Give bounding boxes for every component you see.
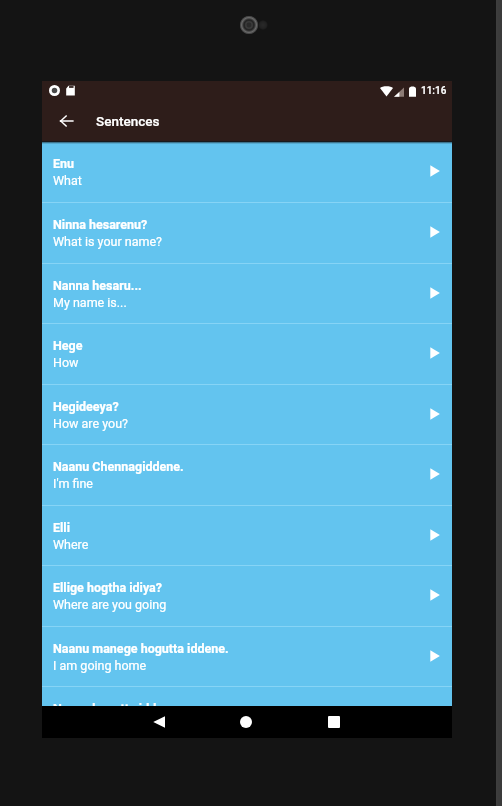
staticText: 11:16 (421, 85, 447, 97)
button[interactable]: Play (422, 461, 448, 487)
staticText: Enu (53, 156, 75, 171)
button[interactable]: Home (224, 706, 268, 738)
staticText: My name is... (53, 295, 127, 310)
staticText: Ninna hesarenu? (53, 217, 148, 232)
staticText: Ellige hogtha idiya? (53, 580, 163, 595)
staticText: How (53, 355, 79, 370)
staticText: Hegideeya? (53, 399, 119, 414)
staticText: I'm fine (53, 476, 93, 491)
button[interactable]: Play (422, 158, 448, 184)
button[interactable]: Navigate up (42, 100, 90, 141)
staticText: Elli (53, 520, 70, 535)
staticText: What is your name? (53, 234, 162, 249)
staticText: How are you? (53, 416, 128, 431)
button[interactable]: Hege (42, 323, 452, 384)
button[interactable]: Enu (42, 142, 452, 203)
button[interactable]: Elli (42, 505, 452, 566)
button[interactable]: Play (422, 582, 448, 608)
button[interactable]: Play (422, 401, 448, 427)
staticText: Sentences (96, 113, 160, 129)
staticText: Hege (53, 338, 83, 353)
button[interactable]: Naanu manege hogutta iddene. (42, 626, 452, 687)
staticText: Where are you going (53, 597, 167, 612)
staticText: Naanu hogutta iddene. (53, 701, 181, 706)
button[interactable]: Naanu hogutta iddene. (42, 686, 452, 706)
button[interactable]: Play (422, 280, 448, 306)
button[interactable]: Play (422, 522, 448, 548)
staticText: What (53, 173, 82, 188)
staticText: Where (53, 537, 89, 552)
staticText: Naanu Chennagiddene. (53, 459, 184, 474)
button[interactable]: Play (422, 340, 448, 366)
staticText: Nanna hesaru... (53, 278, 142, 293)
button[interactable]: Ninna hesarenu? (42, 202, 452, 263)
button[interactable]: Nanna hesaru... (42, 263, 452, 324)
button[interactable]: Play (422, 643, 448, 669)
button[interactable]: Play (422, 219, 448, 245)
button[interactable]: Hegideeya? (42, 384, 452, 445)
staticText: I am going home (53, 658, 147, 673)
button[interactable]: Recent apps (312, 706, 356, 738)
button[interactable]: Back (137, 706, 181, 738)
staticText: Naanu manege hogutta iddene. (53, 641, 229, 656)
button[interactable]: Naanu Chennagiddene. (42, 444, 452, 505)
button[interactable]: Ellige hogtha idiya? (42, 565, 452, 626)
